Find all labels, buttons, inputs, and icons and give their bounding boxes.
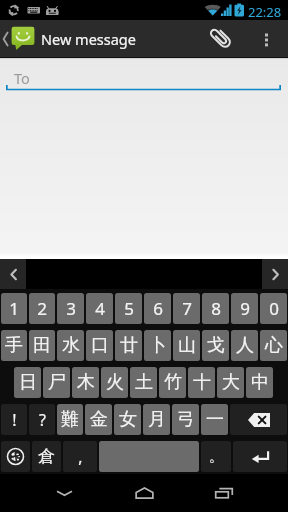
staticText: 竹 — [164, 371, 182, 394]
staticText: 2 — [37, 297, 47, 320]
button[interactable]: 6 — [144, 293, 171, 324]
button[interactable]: 中 — [246, 367, 273, 398]
staticText: 22:28 — [248, 3, 282, 21]
staticText: 水 — [62, 334, 80, 357]
staticText: 0 — [269, 297, 279, 320]
button[interactable]: 5 — [115, 293, 142, 324]
button[interactable]: 戈 — [202, 330, 229, 361]
button[interactable]: 木 — [72, 367, 99, 398]
button[interactable]: 女 — [114, 404, 141, 435]
button[interactable]: 一 — [201, 404, 228, 435]
staticText: 心 — [265, 334, 283, 357]
button[interactable]: 山 — [173, 330, 200, 361]
button[interactable]: 4 — [86, 293, 113, 324]
staticText: ? — [39, 409, 46, 431]
button[interactable]: 尸 — [43, 367, 70, 398]
button[interactable]: Back — [44, 474, 84, 512]
staticText: 日 — [19, 371, 37, 394]
button[interactable]: 弓 — [172, 404, 199, 435]
button[interactable]: Enter — [233, 441, 287, 472]
staticText: 中 — [251, 371, 269, 394]
button[interactable]: 日 — [14, 367, 41, 398]
staticText: 1 — [9, 297, 19, 320]
button[interactable]: 手 — [1, 330, 27, 361]
staticText: 口 — [91, 334, 109, 357]
staticText: 難 — [61, 408, 79, 431]
button[interactable]: 廿 — [115, 330, 142, 361]
button[interactable]: 3 — [57, 293, 84, 324]
button[interactable]: 0 — [260, 293, 287, 324]
button[interactable]: 金 — [85, 404, 112, 435]
button[interactable]: 難 — [57, 404, 83, 435]
button[interactable]: 8 — [202, 293, 229, 324]
staticText: 人 — [236, 334, 254, 357]
staticText: 3 — [66, 297, 76, 320]
staticText: 戈 — [207, 334, 225, 357]
button[interactable]: 2 — [29, 293, 55, 324]
staticText: 倉 — [38, 446, 55, 467]
button[interactable]: 水 — [57, 330, 84, 361]
staticText: 田 — [33, 334, 51, 357]
staticText: 8 — [211, 297, 221, 320]
button[interactable]: Delete — [230, 404, 287, 435]
button[interactable]: ! — [1, 404, 27, 435]
button[interactable]: Previous candidates — [0, 259, 26, 289]
staticText: 7 — [182, 297, 192, 320]
staticText: 6 — [153, 297, 163, 320]
button[interactable]: 口 — [86, 330, 113, 361]
button[interactable]: 。 — [201, 441, 231, 472]
button[interactable]: More options — [252, 20, 280, 58]
staticText: 尸 — [48, 371, 66, 394]
button[interactable]: , — [63, 441, 97, 472]
staticText: 山 — [178, 334, 196, 357]
staticText: , — [78, 446, 83, 468]
staticText: 女 — [119, 408, 137, 431]
staticText: 火 — [106, 371, 124, 394]
staticText: 一 — [206, 408, 224, 431]
button[interactable]: 大 — [217, 367, 244, 398]
button[interactable]: More candidates — [262, 259, 288, 289]
button[interactable]: 竹 — [159, 367, 186, 398]
staticText: 卜 — [149, 334, 167, 357]
staticText: 土 — [135, 371, 153, 394]
button[interactable]: Navigate up — [0, 20, 40, 58]
staticText: 4 — [95, 297, 105, 320]
button[interactable]: 倉 — [32, 441, 61, 472]
button[interactable]: 9 — [231, 293, 258, 324]
button[interactable]: 心 — [260, 330, 287, 361]
button[interactable]: 人 — [231, 330, 258, 361]
button[interactable]: 卜 — [144, 330, 171, 361]
button[interactable]: Attach — [203, 20, 241, 58]
staticText: New message — [41, 29, 136, 49]
button[interactable]: Home — [124, 474, 164, 512]
staticText: 月 — [148, 408, 166, 431]
staticText: To — [14, 68, 30, 88]
staticText: 廿 — [120, 334, 138, 357]
staticText: ! — [12, 409, 17, 431]
staticText: 金 — [90, 408, 108, 431]
button[interactable]: 土 — [130, 367, 157, 398]
staticText: 9 — [240, 297, 250, 320]
button[interactable]: 火 — [101, 367, 128, 398]
staticText: 十 — [193, 371, 211, 394]
button[interactable]: 月 — [143, 404, 170, 435]
button[interactable]: Recent apps — [204, 474, 244, 512]
staticText: 弓 — [177, 408, 195, 431]
button[interactable]: 田 — [29, 330, 55, 361]
staticText: 。 — [209, 448, 223, 466]
staticText: 5 — [124, 297, 134, 320]
staticText: 手 — [5, 334, 23, 357]
button[interactable]: 十 — [188, 367, 215, 398]
button[interactable]: Change input method — [1, 441, 30, 472]
button[interactable]: 7 — [173, 293, 200, 324]
staticText: 木 — [77, 371, 95, 394]
button[interactable]: ? — [29, 404, 55, 435]
button[interactable]: 1 — [1, 293, 27, 324]
staticText: 大 — [222, 371, 240, 394]
